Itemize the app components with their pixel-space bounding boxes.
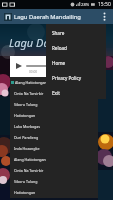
button[interactable]: Privacy Policy: [46, 70, 106, 85]
staticText: Luka Morbagas: [14, 124, 41, 129]
staticText: Home: [52, 60, 66, 66]
staticText: Share: [52, 30, 65, 36]
staticText: 00:00: [29, 70, 38, 74]
button[interactable]: Hatiotongan: [10, 187, 98, 198]
button[interactable]: Alang Hatiotongan: [10, 77, 98, 88]
button[interactable]: Home: [46, 55, 106, 70]
button[interactable]: Cinta Na Tarsirbir: [10, 165, 98, 176]
button[interactable]: Hatiotongan: [10, 110, 98, 121]
button[interactable]: Reload: [46, 40, 106, 55]
button[interactable]: Play: [12, 59, 25, 72]
staticText: Siboru Tulang: [14, 102, 38, 107]
staticText: Privacy Policy: [52, 75, 81, 81]
staticText: Lagu Daerah Mandailing: [14, 13, 81, 21]
staticText: Hatiotongan: [14, 190, 36, 195]
button[interactable]: Duri Pandieng: [10, 132, 98, 143]
staticText: Siboru Tulang: [14, 179, 38, 184]
staticText: Exit: [52, 90, 60, 96]
button[interactable]: Siboru Tulang: [10, 176, 98, 187]
staticText: Lagu Daerah: [9, 35, 72, 50]
staticText: 15:50: [98, 1, 111, 8]
staticText: Inda Hozangke: [14, 146, 40, 151]
button[interactable]: Share: [46, 25, 106, 40]
staticText: Alang Hatiotongan: [14, 157, 46, 162]
button[interactable]: More options: [98, 10, 111, 23]
staticText: Alang Hatiotongan: [15, 80, 47, 85]
button[interactable]: Inda Hozangke: [10, 143, 98, 154]
button[interactable]: Cinta Na Tarsirbir: [10, 88, 98, 99]
staticText: 28%: [81, 2, 90, 8]
staticText: Duri Pandieng: [14, 135, 39, 140]
button[interactable]: Alang Hatiotongan: [10, 154, 98, 165]
staticText: Reload: [52, 45, 67, 51]
staticText: Hatiotongan: [14, 113, 36, 118]
button[interactable]: Luka Morbagas: [10, 121, 98, 132]
staticText: Cinta Na Tarsirbir: [14, 91, 44, 96]
button[interactable]: Exit: [46, 85, 106, 100]
button[interactable]: Siboru Tulang: [10, 99, 98, 110]
staticText: Cinta Na Tarsirbir: [14, 168, 44, 173]
